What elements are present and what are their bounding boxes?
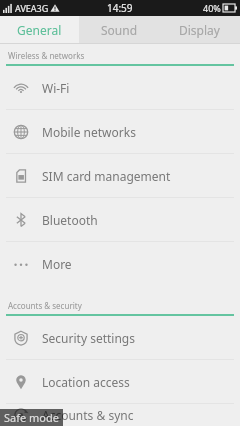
- staticText: 14:59: [107, 1, 133, 15]
- staticText: 40%: [203, 2, 221, 14]
- staticText: Location access: [42, 374, 130, 390]
- button[interactable]: Security settings: [0, 316, 240, 359]
- button[interactable]: Bluetooth: [0, 198, 240, 241]
- staticText: Mobile networks: [42, 124, 136, 140]
- button[interactable]: SIM card management: [0, 154, 240, 197]
- button[interactable]: More: [0, 242, 240, 285]
- staticText: Display: [179, 22, 220, 38]
- staticText: Sound: [101, 22, 138, 38]
- button[interactable]: Accounts & sync: [0, 404, 240, 426]
- staticText: Bluetooth: [42, 212, 98, 228]
- staticText: Wireless & networks: [8, 50, 85, 61]
- button[interactable]: Display: [159, 16, 240, 43]
- staticText: More: [42, 256, 72, 272]
- staticText: Safe mode: [4, 410, 59, 425]
- staticText: SIM card management: [42, 168, 171, 184]
- staticText: Wi-Fi: [42, 80, 70, 96]
- staticText: AVEA3G: [15, 2, 49, 14]
- staticText: Accounts & sync: [42, 407, 134, 423]
- staticText: General: [17, 22, 62, 38]
- button[interactable]: Sound: [79, 16, 159, 43]
- button[interactable]: Location access: [0, 360, 240, 403]
- button[interactable]: General: [0, 16, 79, 43]
- staticText: Accounts & security: [8, 300, 82, 311]
- button[interactable]: Wi-Fi: [0, 66, 240, 109]
- button[interactable]: Mobile networks: [0, 110, 240, 153]
- staticText: Security settings: [42, 330, 135, 346]
